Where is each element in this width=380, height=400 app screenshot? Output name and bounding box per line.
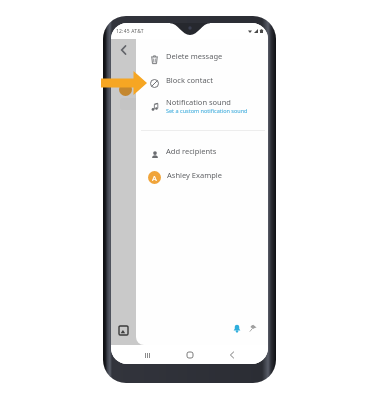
staticText: Set a custom notification sound: [166, 107, 248, 114]
button[interactable]: Home: [183, 348, 197, 362]
button[interactable]: Notification sound: [136, 92, 268, 119]
button[interactable]: Notifications: [230, 321, 243, 334]
button[interactable]: Block contact: [136, 68, 268, 92]
staticText: Block contact: [166, 75, 213, 85]
button[interactable]: Delete message: [136, 44, 268, 68]
button[interactable]: Pin: [246, 321, 259, 334]
button[interactable]: Back: [225, 348, 239, 362]
staticText: A: [152, 173, 157, 183]
button[interactable]: Add recipients: [136, 139, 268, 163]
button[interactable]: A: [136, 163, 268, 186]
staticText: Delete message: [166, 51, 223, 61]
staticText: Notification sound: [166, 97, 231, 107]
staticText: Add recipients: [166, 146, 217, 156]
staticText: 12:45 AT&T: [116, 28, 144, 35]
staticText: Ashley Example: [167, 170, 222, 180]
button[interactable]: Recents: [140, 348, 154, 362]
